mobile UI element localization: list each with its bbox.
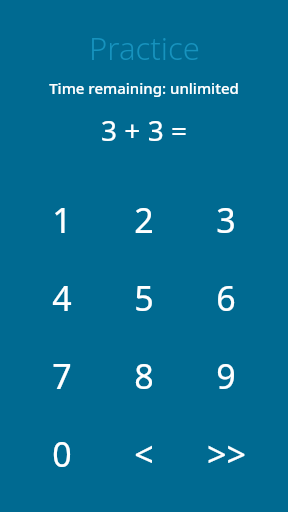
button[interactable]: Digit 1 bbox=[21, 181, 103, 259]
button[interactable]: Digit 9 bbox=[185, 337, 267, 415]
button[interactable]: Next bbox=[185, 415, 267, 493]
button[interactable]: Digit 7 bbox=[21, 337, 103, 415]
staticText: 9 bbox=[216, 353, 236, 399]
staticText: 2 bbox=[134, 197, 154, 243]
staticText: 8 bbox=[134, 353, 154, 399]
staticText: 5 bbox=[134, 275, 154, 321]
staticText: 6 bbox=[216, 275, 236, 321]
button[interactable]: Backspace bbox=[103, 415, 185, 493]
button[interactable]: Digit 0 bbox=[21, 415, 103, 493]
button[interactable]: Digit 2 bbox=[103, 181, 185, 259]
button[interactable]: Digit 5 bbox=[103, 259, 185, 337]
button[interactable]: Digit 8 bbox=[103, 337, 185, 415]
staticText: 0 bbox=[52, 431, 72, 477]
staticText: 3 bbox=[216, 197, 236, 243]
staticText: < bbox=[134, 431, 154, 477]
button[interactable]: Digit 3 bbox=[185, 181, 267, 259]
staticText: Time remaining: unlimited bbox=[49, 78, 239, 98]
button[interactable]: Digit 6 bbox=[185, 259, 267, 337]
staticText: 4 bbox=[52, 275, 72, 321]
button[interactable]: Digit 4 bbox=[21, 259, 103, 337]
button[interactable]: Practice bbox=[0, 27, 288, 69]
staticText: 7 bbox=[52, 353, 72, 399]
staticText: 1 bbox=[52, 197, 72, 243]
staticText: >> bbox=[207, 431, 246, 477]
staticText: Practice bbox=[89, 27, 200, 69]
staticText: 3 + 3 = bbox=[101, 111, 187, 149]
